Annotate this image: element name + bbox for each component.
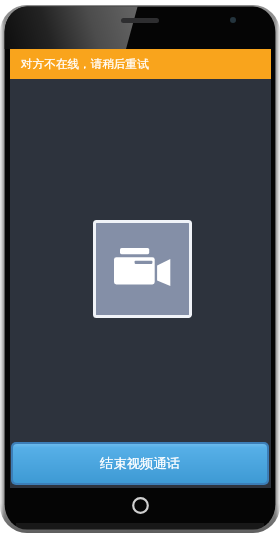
staticText: 对方不在线，请稍后重试 [21,57,149,72]
button[interactable] [96,223,189,315]
staticText: 结束视频通话 [100,455,180,472]
button[interactable]: Home [132,497,149,514]
button[interactable]: 对方不在线，请稍后重试 [10,49,271,79]
button[interactable]: 结束视频通话 [13,444,267,483]
